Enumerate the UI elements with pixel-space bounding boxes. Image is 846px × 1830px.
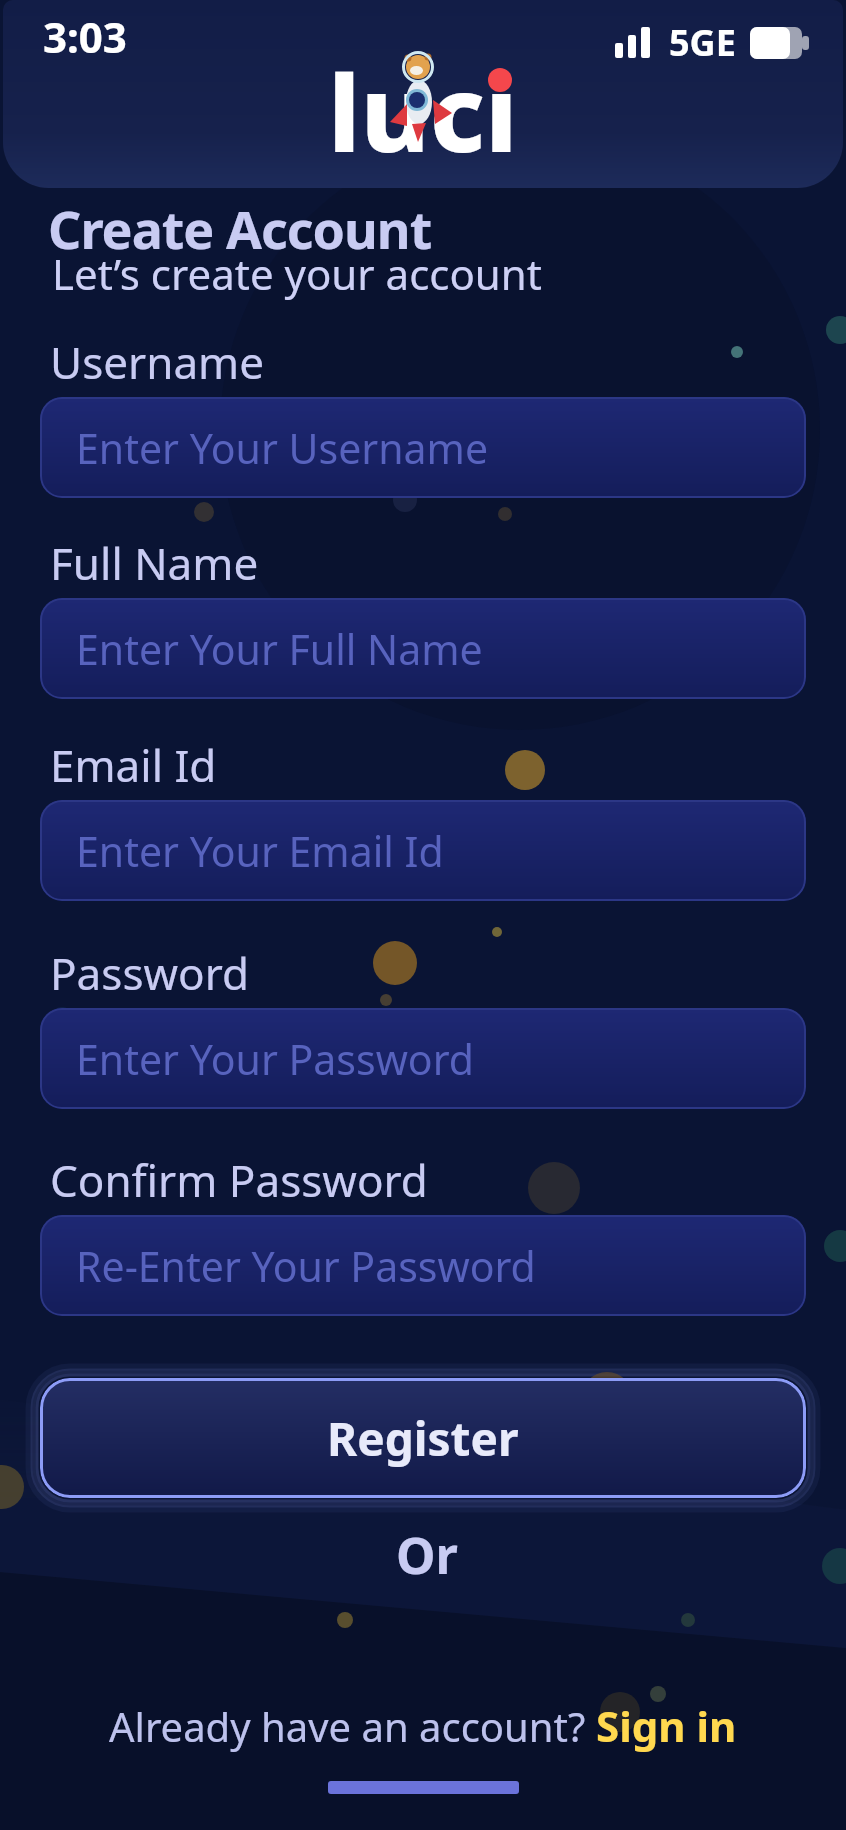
button[interactable]: Re-Enter Your Password [40,1215,806,1316]
staticText: Let’s create your account [52,245,542,302]
staticText: Create Account [48,193,432,264]
staticText: Enter Your Email Id [76,823,444,879]
staticText: Enter Your Username [76,420,489,476]
staticText: Full Name [50,533,259,593]
button[interactable]: Enter Your Email Id [40,800,806,901]
button[interactable]: Enter Your Password [40,1008,806,1109]
staticText: Enter Your Password [76,1031,474,1087]
staticText: 3:03 [43,8,127,65]
staticText: luci [328,40,518,183]
button[interactable]: Register [40,1378,806,1498]
staticText: Enter Your Full Name [76,621,483,677]
staticText: 5GE [669,18,736,67]
staticText: Email Id [50,735,217,795]
staticText: Sign in [596,1697,737,1754]
staticText: Confirm Password [50,1150,428,1210]
button[interactable]: Already have an account? [109,1697,737,1754]
button[interactable]: Enter Your Username [40,397,806,498]
staticText: Password [50,943,250,1003]
staticText: Or [396,1521,458,1589]
staticText: Re-Enter Your Password [76,1238,536,1294]
button[interactable]: Enter Your Full Name [40,598,806,699]
staticText: Register [327,1407,519,1470]
staticText: Already have an account? [109,1699,596,1753]
staticText: Username [50,332,265,392]
